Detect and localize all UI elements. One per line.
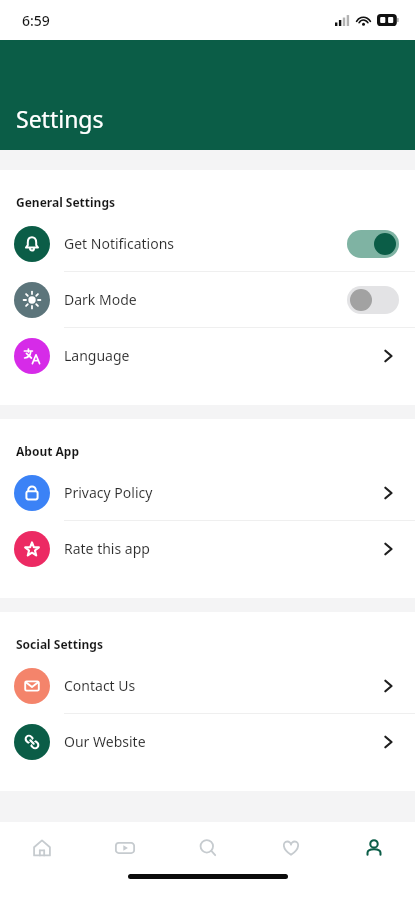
other: Open bbox=[377, 731, 399, 753]
button[interactable]: Toggle off bbox=[347, 286, 399, 314]
button[interactable]: Privacy Policy bbox=[0, 465, 415, 520]
button[interactable]: Get Notifications bbox=[0, 216, 415, 271]
other: Open bbox=[377, 675, 399, 697]
button[interactable]: Favorites bbox=[249, 822, 332, 874]
staticText: Language bbox=[64, 346, 377, 365]
staticText: About App bbox=[16, 443, 79, 459]
button[interactable]: Profile bbox=[332, 822, 415, 874]
staticText: Settings bbox=[16, 103, 104, 134]
button[interactable]: Toggle on bbox=[347, 230, 399, 258]
button[interactable]: Dark Mode bbox=[0, 272, 415, 327]
button[interactable]: Language bbox=[0, 328, 415, 383]
staticText: Get Notifications bbox=[64, 234, 347, 253]
staticText: Privacy Policy bbox=[64, 483, 377, 502]
staticText: Contact Us bbox=[64, 676, 377, 695]
staticText: Dark Mode bbox=[64, 290, 347, 309]
button[interactable]: Videos bbox=[83, 822, 166, 874]
button[interactable]: Contact Us bbox=[0, 658, 415, 713]
staticText: Rate this app bbox=[64, 539, 377, 558]
staticText: General Settings bbox=[16, 194, 116, 210]
other: Open bbox=[377, 538, 399, 560]
staticText: Social Settings bbox=[16, 636, 103, 652]
button[interactable]: Rate this app bbox=[0, 521, 415, 576]
other: Open bbox=[377, 345, 399, 367]
staticText: Our Website bbox=[64, 732, 377, 751]
button[interactable]: Our Website bbox=[0, 714, 415, 769]
other: Open bbox=[377, 482, 399, 504]
staticText: 6:59 bbox=[22, 11, 50, 30]
button[interactable]: Search bbox=[166, 822, 249, 874]
button[interactable]: Home bbox=[0, 822, 83, 874]
